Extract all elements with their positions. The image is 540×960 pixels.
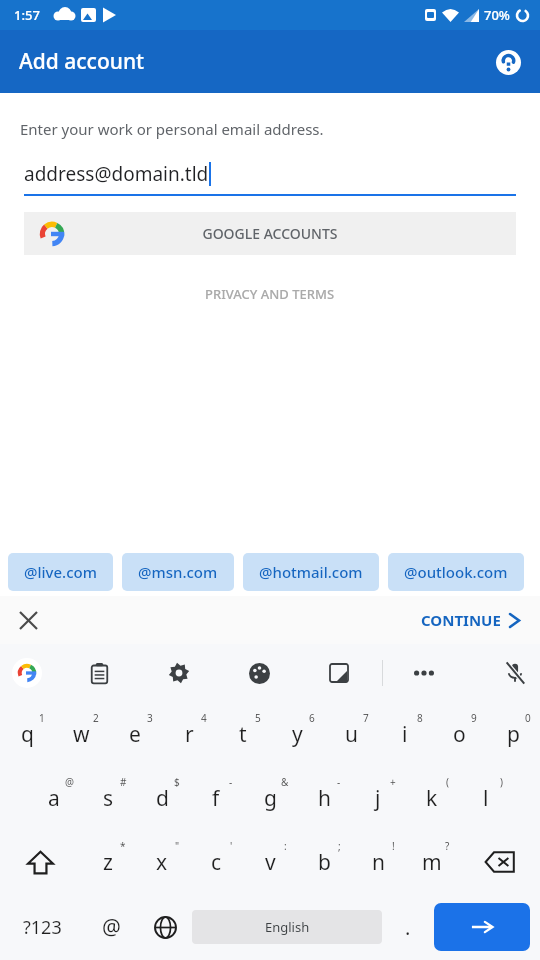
button[interactable]: @ [84,894,138,960]
button[interactable]: a [27,766,81,830]
staticText: y [292,720,303,749]
staticText: + [390,775,396,789]
button[interactable]: o [432,702,486,766]
button[interactable]: GOOGLE ACCOUNTS [24,212,516,255]
staticText: t [239,720,247,749]
staticText: ( [446,775,449,789]
button[interactable]: n [351,830,405,894]
staticText: @ [102,913,121,942]
staticText: 1:57 [14,6,40,24]
button[interactable]: v [243,830,297,894]
staticText: 6 [309,711,315,725]
button[interactable]: g [243,766,297,830]
button[interactable]: PRIVACY AND TERMS [199,279,341,309]
button[interactable]: p [486,702,540,766]
button[interactable]: r [162,702,216,766]
button[interactable]: q [0,702,54,766]
button[interactable]: e [108,702,162,766]
button[interactable]: Shift [0,830,81,894]
button[interactable]: Google [10,656,44,690]
button[interactable]: w [54,702,108,766]
staticText: k [426,784,438,813]
button[interactable]: English [192,910,382,944]
button[interactable]: s [81,766,135,830]
staticText: ?123 [23,915,62,940]
staticText: 4 [201,711,207,725]
staticText: l [483,784,489,813]
button[interactable]: f [189,766,243,830]
staticText: z [103,848,113,877]
button[interactable]: d [135,766,189,830]
button[interactable]: Backspace [459,830,540,894]
staticText: : [284,839,287,853]
staticText: ! [392,839,395,853]
button[interactable]: . [382,894,434,960]
staticText: v [265,848,276,877]
staticText: m [422,848,442,877]
staticText: @msn.com [138,562,218,582]
button[interactable]: Enter [434,903,530,951]
staticText: . [405,914,411,941]
button[interactable]: z [81,830,135,894]
button[interactable]: @hotmail.com [243,553,379,591]
staticText: CONTINUE [421,610,501,630]
staticText: 0 [525,711,531,725]
staticText: @ [65,775,74,789]
button[interactable]: l [459,766,513,830]
staticText: p [507,720,520,749]
staticText: q [21,720,34,749]
button[interactable]: t [216,702,270,766]
staticText: ? [445,839,450,853]
button[interactable]: b [297,830,351,894]
button[interactable]: k [405,766,459,830]
staticText: $ [174,775,180,789]
staticText: @outlook.com [404,562,508,582]
button[interactable]: address@domain.tld [24,161,516,196]
button[interactable]: m [405,830,459,894]
staticText: 3 [147,711,153,725]
staticText: 5 [255,711,261,725]
button[interactable]: c [189,830,243,894]
button[interactable]: i [378,702,432,766]
staticText: * [120,839,126,853]
staticText: h [318,784,331,813]
button[interactable]: Theme [242,656,276,690]
staticText: j [375,784,381,813]
button[interactable]: Clipboard [82,656,116,690]
button[interactable]: ?123 [0,894,84,960]
staticText: r [185,720,194,749]
staticText: English [265,918,310,936]
staticText: s [103,784,114,813]
button[interactable]: Help [490,44,526,80]
button[interactable]: Resize keyboard [322,656,356,690]
staticText: u [345,720,358,749]
button[interactable]: Close [8,600,48,640]
staticText: Enter your work or personal email addres… [20,119,324,139]
staticText: 9 [471,711,477,725]
button[interactable]: j [351,766,405,830]
staticText: # [120,775,127,789]
staticText: & [281,775,289,789]
staticText: i [402,720,408,749]
button[interactable]: @outlook.com [388,553,524,591]
staticText: w [73,720,90,749]
staticText: 70% [484,6,510,24]
staticText: c [211,848,222,877]
button[interactable]: Change language [138,894,192,960]
staticText: a [48,784,60,813]
staticText: b [318,848,331,877]
staticText: f [212,784,220,813]
button[interactable]: More options [407,656,441,690]
button[interactable]: CONTINUE [415,604,526,636]
button[interactable]: Voice input off [498,656,532,690]
button[interactable]: x [135,830,189,894]
button[interactable]: @msn.com [122,553,234,591]
staticText: address@domain.tld [24,161,209,187]
button[interactable]: u [324,702,378,766]
button[interactable]: @live.com [8,553,113,591]
button[interactable]: h [297,766,351,830]
staticText: 2 [93,711,99,725]
button[interactable]: Settings [162,656,196,690]
staticText: GOOGLE ACCOUNTS [64,224,476,243]
button[interactable]: y [270,702,324,766]
